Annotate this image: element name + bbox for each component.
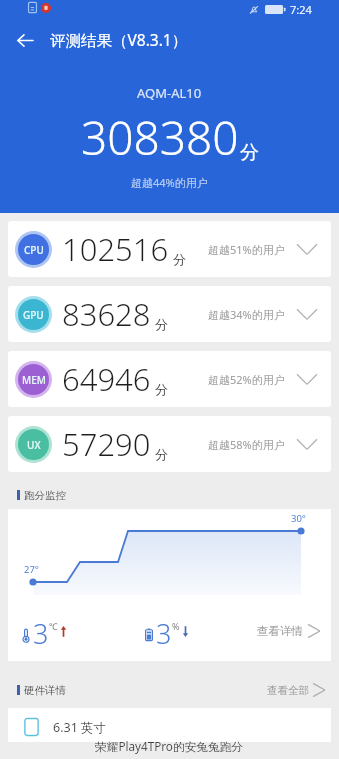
staticText: 超越34%的用户	[208, 307, 285, 322]
staticText: 3	[33, 615, 49, 652]
staticText: 分	[240, 141, 259, 165]
staticText: 3	[156, 615, 172, 652]
staticText: ℃	[49, 620, 58, 632]
staticText: 308380	[81, 106, 239, 169]
staticText: 查看全部	[267, 684, 309, 697]
staticText: 102516	[62, 228, 169, 270]
staticText: 7:24	[290, 2, 312, 17]
button[interactable]: CPU	[8, 221, 331, 277]
staticText: 分	[155, 446, 168, 462]
staticText: GPU	[23, 308, 44, 322]
staticText: 27°	[24, 563, 39, 576]
staticText: 超越51%的用户	[208, 242, 285, 257]
staticText: 超越44%的用户	[131, 175, 208, 190]
staticText: 分	[155, 316, 168, 332]
staticText: AQM-AL10	[137, 84, 202, 102]
button[interactable]: GPU	[8, 286, 331, 342]
button[interactable]: 6.31 英寸	[24, 708, 321, 742]
staticText: 评测结果（V8.3.1）	[50, 29, 188, 50]
staticText: 分	[155, 381, 168, 397]
staticText: CPU	[24, 243, 44, 257]
staticText: 57290	[62, 423, 151, 465]
staticText: 64946	[62, 358, 151, 400]
staticText: 超越52%的用户	[208, 372, 285, 387]
staticText: 硬件详情	[24, 684, 66, 697]
button[interactable]: 查看详情	[257, 620, 321, 642]
staticText: 荣耀Play4TPro的安兔兔跑分	[95, 738, 244, 754]
staticText: UX	[27, 438, 41, 452]
staticText: 分	[173, 251, 186, 267]
staticText: 跑分监控	[24, 489, 66, 502]
staticText: 83628	[62, 293, 151, 335]
button[interactable]: Back	[0, 18, 50, 62]
button[interactable]: UX	[8, 416, 331, 472]
button[interactable]: MEM	[8, 351, 331, 407]
staticText: MEM	[22, 373, 46, 387]
staticText: 6.31 英寸	[53, 719, 107, 736]
staticText: 查看详情	[257, 624, 303, 638]
staticText: 30°	[291, 512, 306, 525]
button[interactable]: 查看全部	[267, 679, 326, 701]
staticText: 超越58%的用户	[208, 437, 285, 452]
staticText: %	[172, 620, 180, 632]
